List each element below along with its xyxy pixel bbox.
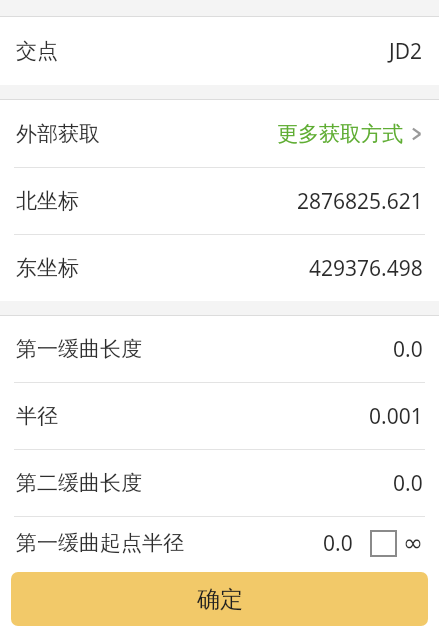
staticText: 东坐标 bbox=[16, 255, 79, 281]
staticText: 确定 bbox=[197, 585, 243, 614]
staticText: ∞ bbox=[403, 529, 423, 557]
staticText: 更多获取方式 bbox=[277, 121, 403, 147]
staticText: 外部获取 bbox=[16, 121, 100, 147]
staticText: 429376.498 bbox=[309, 254, 423, 283]
other: More bbox=[410, 123, 423, 145]
button[interactable]: 第一缓曲起点半径 bbox=[0, 517, 439, 569]
staticText: 2876825.621 bbox=[297, 187, 423, 216]
staticText: 半径 bbox=[16, 403, 58, 429]
staticText: 0.0 bbox=[393, 469, 423, 498]
staticText: 北坐标 bbox=[16, 188, 79, 214]
button[interactable]: 半径 bbox=[0, 383, 439, 449]
button[interactable]: 确定 bbox=[11, 572, 428, 626]
button[interactable]: 第一缓曲长度 bbox=[0, 316, 439, 382]
staticText: JD2 bbox=[389, 37, 423, 66]
button[interactable]: 东坐标 bbox=[0, 235, 439, 301]
button[interactable]: 第二缓曲长度 bbox=[0, 450, 439, 516]
staticText: 0.0 bbox=[323, 529, 353, 558]
staticText: 0.0 bbox=[393, 335, 423, 364]
button[interactable]: 外部获取 bbox=[0, 100, 439, 167]
staticText: 第一缓曲长度 bbox=[16, 336, 142, 362]
staticText: 第二缓曲长度 bbox=[16, 470, 142, 496]
button[interactable]: 北坐标 bbox=[0, 168, 439, 234]
button[interactable]: Infinity checkbox bbox=[371, 531, 396, 556]
staticText: 交点 bbox=[16, 38, 58, 64]
staticText: 第一缓曲起点半径 bbox=[16, 530, 184, 556]
button[interactable]: 交点 bbox=[0, 17, 439, 85]
staticText: 0.001 bbox=[369, 402, 423, 431]
